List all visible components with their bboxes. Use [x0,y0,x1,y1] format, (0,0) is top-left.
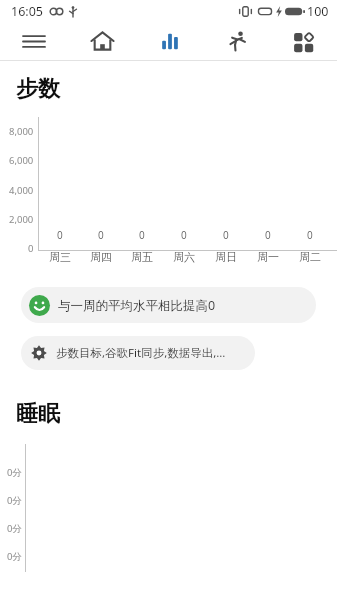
staticText: 0分 [7,466,22,479]
staticText: 与一周的平均水平相比提高0 [58,297,216,314]
staticText: 步数 [16,75,60,103]
staticText: 周二 [299,250,321,264]
staticText: 周三 [49,250,71,264]
button[interactable]: Home [68,22,136,60]
button[interactable]: 与一周的平均水平相比提高0 [21,287,316,323]
staticText: 步数目标,谷歌Fit同步,数据导出,… [56,345,226,361]
staticText: 周一 [257,250,279,264]
button[interactable]: 步数目标,谷歌Fit同步,数据导出,… [21,336,255,370]
staticText: 周日 [215,250,237,264]
staticText: 6,000 [9,154,34,165]
staticText: 0分 [7,550,22,563]
staticText: 0 [265,228,271,242]
staticText: 0 [98,228,104,242]
staticText: 0分 [7,522,22,535]
button[interactable]: Apps [270,22,337,60]
staticText: 0 [307,228,313,242]
staticText: 16:05 [11,3,43,20]
staticText: 0 [223,228,229,242]
staticText: 周六 [173,250,195,264]
staticText: 周四 [90,250,112,264]
staticText: 0 [28,242,34,253]
staticText: 4,000 [9,184,34,195]
button[interactable]: Menu [0,22,68,60]
staticText: 100 [307,3,329,20]
staticText: 0分 [7,494,22,507]
staticText: 0 [139,228,145,242]
staticText: 0 [181,228,187,242]
staticText: 8,000 [9,125,34,136]
staticText: 睡眠 [16,400,60,428]
staticText: 周五 [131,250,153,264]
button[interactable]: Activity [203,22,270,60]
staticText: 0 [57,228,63,242]
button[interactable]: Statistics [136,22,203,60]
staticText: 2,000 [9,213,34,224]
